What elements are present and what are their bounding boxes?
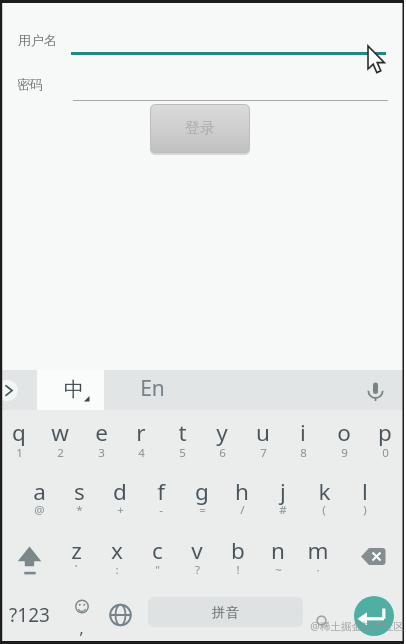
staticText: t — [178, 417, 187, 448]
button[interactable]: v — [157, 530, 237, 570]
button[interactable]: 拼音 — [148, 597, 303, 627]
staticText: y — [216, 417, 228, 448]
staticText: 0 — [382, 445, 389, 461]
staticText: ~ — [275, 562, 282, 578]
button[interactable]: g — [162, 471, 242, 511]
staticText: 3 — [98, 445, 105, 461]
staticText: w — [51, 417, 69, 448]
staticText: z — [71, 535, 82, 566]
button[interactable]: f — [121, 471, 201, 511]
button[interactable]: x — [77, 530, 157, 570]
button[interactable] — [0, 380, 18, 401]
staticText: r — [136, 417, 146, 448]
staticText: m — [307, 535, 329, 566]
staticText: i — [300, 417, 306, 448]
staticText: - — [159, 502, 163, 518]
staticText: 登录 — [185, 119, 215, 138]
staticText: ` — [74, 562, 78, 578]
staticText: u — [256, 417, 270, 448]
staticText: c — [152, 535, 163, 566]
button[interactable]: a — [0, 471, 79, 511]
staticText: p — [378, 417, 392, 448]
button[interactable]: y — [182, 412, 262, 452]
staticText: s — [74, 476, 85, 507]
staticText: 9 — [341, 445, 348, 461]
button[interactable] — [354, 596, 394, 636]
staticText: En — [140, 374, 165, 403]
staticText: x — [111, 535, 123, 566]
button[interactable]: q — [0, 412, 59, 452]
staticText: 4 — [138, 445, 145, 461]
button[interactable]: j — [243, 471, 323, 511]
button[interactable] — [37, 370, 104, 410]
staticText: g — [195, 476, 209, 507]
staticText: " — [155, 562, 160, 578]
button[interactable]: c — [117, 530, 197, 570]
staticText: o — [337, 417, 351, 448]
button[interactable]: o — [304, 412, 384, 452]
staticText: ) — [363, 502, 367, 518]
staticText: v — [191, 535, 203, 566]
staticText: d — [113, 476, 127, 507]
staticText: / — [240, 502, 245, 518]
staticText: 密码 — [17, 76, 43, 92]
staticText: 8 — [300, 445, 307, 461]
staticText: 2 — [57, 445, 64, 461]
button[interactable]: r — [101, 412, 181, 452]
staticText: : — [115, 562, 119, 578]
button[interactable]: w — [20, 412, 100, 452]
button[interactable]: En — [112, 368, 192, 408]
staticText: h — [235, 476, 249, 507]
staticText: 用户名 — [18, 32, 57, 48]
staticText: + — [117, 502, 124, 518]
staticText: , — [79, 616, 84, 639]
button[interactable]: n — [238, 530, 318, 570]
staticText: l — [362, 476, 368, 507]
staticText: a — [33, 476, 46, 507]
staticText: j — [280, 476, 286, 507]
staticText: ! — [236, 562, 240, 578]
button[interactable]: k — [284, 471, 364, 511]
staticText: e — [95, 417, 108, 448]
button[interactable]: z — [36, 530, 116, 570]
button[interactable]: b — [198, 530, 278, 570]
button[interactable]: ?123 — [0, 595, 69, 635]
staticText: q — [12, 417, 26, 448]
button[interactable]: p — [345, 412, 406, 452]
staticText: 6 — [219, 445, 226, 461]
staticText: · — [316, 562, 320, 578]
button[interactable]: 登录 — [150, 104, 250, 153]
button[interactable]: s — [39, 471, 119, 511]
staticText: @ — [34, 502, 45, 518]
staticText: @稀土掘金技术社区 — [310, 619, 404, 633]
staticText: * — [76, 502, 83, 518]
button[interactable]: t — [142, 412, 222, 452]
button[interactable]: u — [223, 412, 303, 452]
button[interactable]: m — [278, 530, 358, 570]
staticText: 中 — [64, 377, 84, 402]
button[interactable]: l — [325, 471, 405, 511]
staticText: 7 — [260, 445, 267, 461]
button[interactable]: e — [61, 412, 141, 452]
staticText: f — [157, 476, 165, 507]
staticText: ( — [322, 502, 326, 518]
staticText: n — [271, 535, 285, 566]
staticText: # — [279, 502, 287, 518]
staticText: = — [199, 502, 206, 518]
staticText: 拼音 — [212, 604, 239, 621]
staticText: ?123 — [9, 602, 50, 628]
staticText: b — [231, 535, 245, 566]
button[interactable]: h — [202, 471, 282, 511]
button[interactable]: i — [263, 412, 343, 452]
staticText: ? — [195, 562, 200, 578]
staticText: k — [318, 476, 331, 507]
staticText: 1 — [16, 445, 23, 461]
button[interactable]: , — [41, 607, 121, 644]
staticText: 5 — [179, 445, 186, 461]
button[interactable]: d — [80, 471, 160, 511]
